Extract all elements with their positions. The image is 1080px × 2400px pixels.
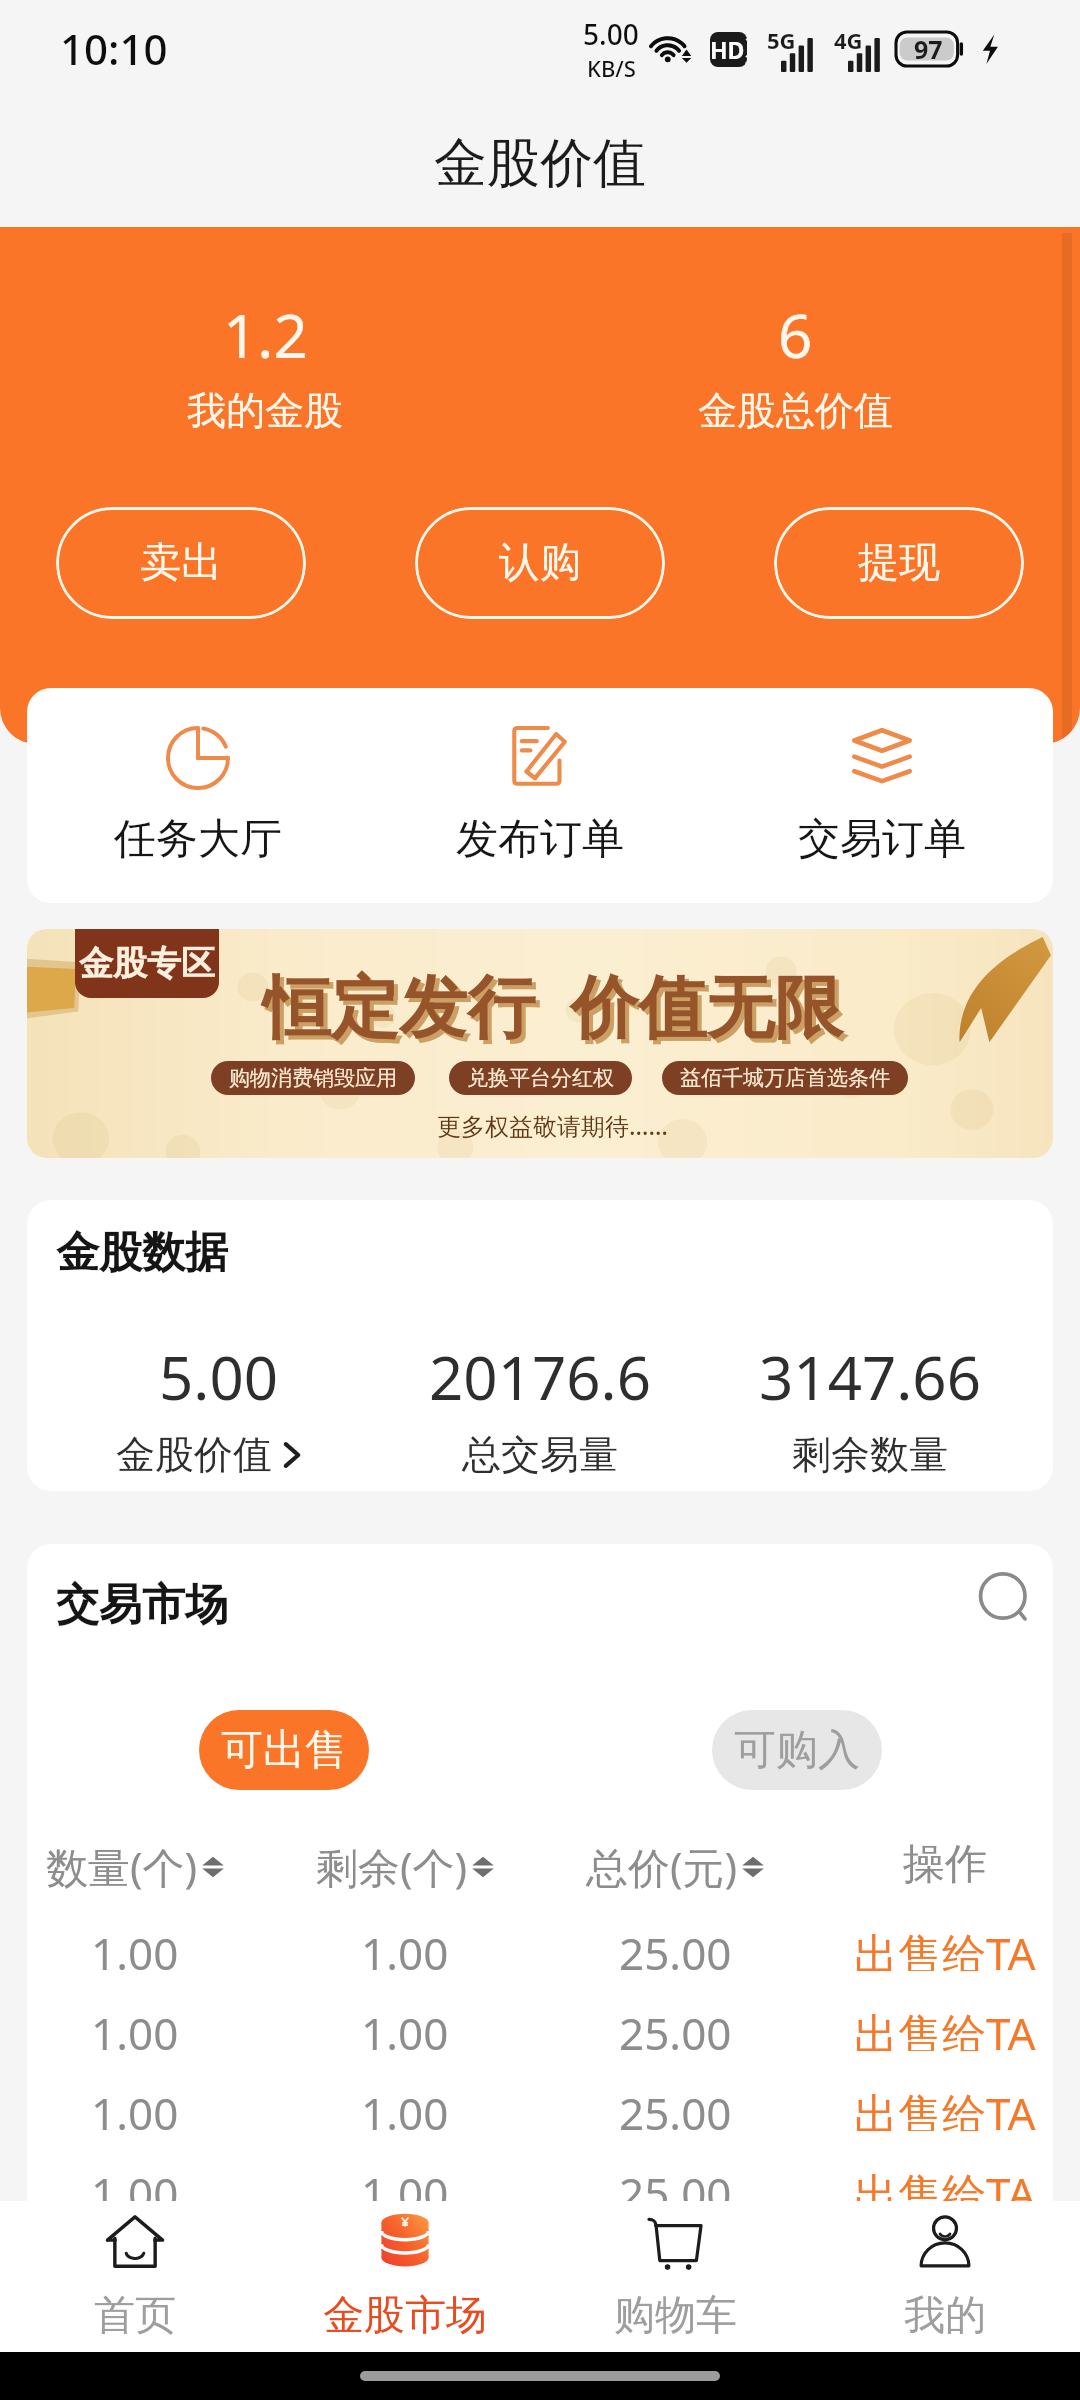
staticText: 恒定发行 价值无限 xyxy=(263,958,843,1051)
staticText: 出售给TA xyxy=(854,2003,1036,2051)
button[interactable]: 首页 xyxy=(0,2201,270,2352)
staticText: 1.00 xyxy=(91,2163,179,2204)
button[interactable]: 20176.6 xyxy=(375,1336,705,1479)
button[interactable]: 出售给TA xyxy=(810,2083,1053,2131)
button[interactable]: 搜索 xyxy=(973,1568,1041,1636)
staticText: 交易市场 xyxy=(56,1578,228,1632)
staticText: 可购入 xyxy=(734,1724,860,1777)
staticText: 5.00 xyxy=(583,15,639,53)
staticText: 数量(个) xyxy=(46,1838,198,1895)
staticText: 出售给TA xyxy=(854,2083,1036,2131)
button[interactable]: 出售给TA xyxy=(810,2163,1053,2204)
staticText: 25.00 xyxy=(619,2163,732,2204)
button[interactable]: 可出售 xyxy=(199,1710,369,1790)
staticText: 剩余(个) xyxy=(316,1838,468,1895)
staticText: HD xyxy=(710,34,745,65)
staticText: 2 xyxy=(745,50,747,67)
staticText: 6 xyxy=(778,294,813,376)
staticText: 发布订单 xyxy=(456,813,624,866)
staticText: 1.00 xyxy=(91,2003,179,2051)
staticText: 购物车 xyxy=(614,2290,737,2342)
staticText: 5.00 xyxy=(159,1336,279,1418)
staticText: 金股市场 xyxy=(323,2290,487,2342)
staticText: 可出售 xyxy=(221,1724,347,1777)
staticText: 总价(元) xyxy=(586,1838,738,1895)
button[interactable]: 出售给TA xyxy=(810,2003,1053,2051)
staticText: 4G xyxy=(834,25,863,55)
staticText: 25.00 xyxy=(619,1923,732,1971)
staticText: 交易订单 xyxy=(798,813,966,866)
button[interactable]: 购物车 xyxy=(540,2201,810,2352)
button[interactable]: 金股市场 xyxy=(270,2201,540,2352)
button[interactable]: 我的 xyxy=(810,2201,1080,2352)
staticText: 剩余数量 xyxy=(792,1430,948,1479)
button[interactable]: 发布订单 xyxy=(369,688,711,903)
staticText: KB/S xyxy=(587,53,636,83)
staticText: 1.00 xyxy=(361,2003,449,2051)
staticText: 3147.66 xyxy=(759,1336,981,1418)
staticText: 97 xyxy=(914,32,943,66)
staticText: 我的 xyxy=(904,2290,986,2342)
staticText: 购物消费销毁应用 xyxy=(229,1065,397,1091)
staticText: 任务大厅 xyxy=(114,813,282,866)
staticText: 金股专区 xyxy=(79,942,215,985)
staticText: 1.00 xyxy=(91,2083,179,2131)
staticText: 总交易量 xyxy=(462,1430,618,1479)
staticText: 1.00 xyxy=(361,2163,449,2204)
staticText: 1 xyxy=(745,32,747,50)
staticText: 恒定发行 价值无限 xyxy=(267,962,847,1055)
staticText: 益佰千城万店首选条件 xyxy=(680,1065,890,1091)
button[interactable]: 3147.66 xyxy=(705,1336,1035,1479)
staticText: 卖出 xyxy=(140,537,222,589)
staticText: 金股总价值 xyxy=(698,386,893,435)
button[interactable]: 5.00 xyxy=(45,1336,375,1479)
staticText: 25.00 xyxy=(619,2003,732,2051)
staticText: 金股价值 xyxy=(434,130,646,197)
button[interactable]: 卖出 xyxy=(56,507,306,619)
staticText: 认购 xyxy=(499,537,581,589)
button[interactable]: 交易订单 xyxy=(711,688,1053,903)
staticText: 金股价值 xyxy=(116,1430,272,1479)
staticText: 金股数据 xyxy=(56,1226,228,1280)
button[interactable]: 总价(元) xyxy=(540,1838,810,1895)
staticText: 操作 xyxy=(903,1838,987,1891)
staticText: 1.00 xyxy=(361,2083,449,2131)
staticText: 1.2 xyxy=(223,294,308,376)
staticText: 出售给TA xyxy=(854,2163,1036,2204)
button[interactable]: 提现 xyxy=(774,507,1024,619)
staticText: 1.00 xyxy=(361,1923,449,1971)
staticText: 出售给TA xyxy=(854,1923,1036,1971)
staticText: 更多权益敬请期待…… xyxy=(437,1109,668,1142)
staticText: 提现 xyxy=(858,537,940,589)
staticText: 10:10 xyxy=(60,20,168,77)
button[interactable]: 任务大厅 xyxy=(27,688,369,903)
button[interactable]: 数量(个) xyxy=(27,1838,270,1895)
staticText: 25.00 xyxy=(619,2083,732,2131)
button[interactable]: 认购 xyxy=(415,507,665,619)
button[interactable]: 金股专区 xyxy=(27,929,1053,1158)
staticText: 20176.6 xyxy=(429,1336,651,1418)
button[interactable]: 可购入 xyxy=(712,1710,882,1790)
button[interactable]: 出售给TA xyxy=(810,1923,1053,1971)
staticText: 我的金股 xyxy=(187,386,343,435)
staticText: 1.00 xyxy=(91,1923,179,1971)
staticText: 兑换平台分红权 xyxy=(467,1065,614,1091)
staticText: 5G xyxy=(767,25,796,55)
button[interactable]: 剩余(个) xyxy=(270,1838,540,1895)
staticText: 首页 xyxy=(94,2290,176,2342)
